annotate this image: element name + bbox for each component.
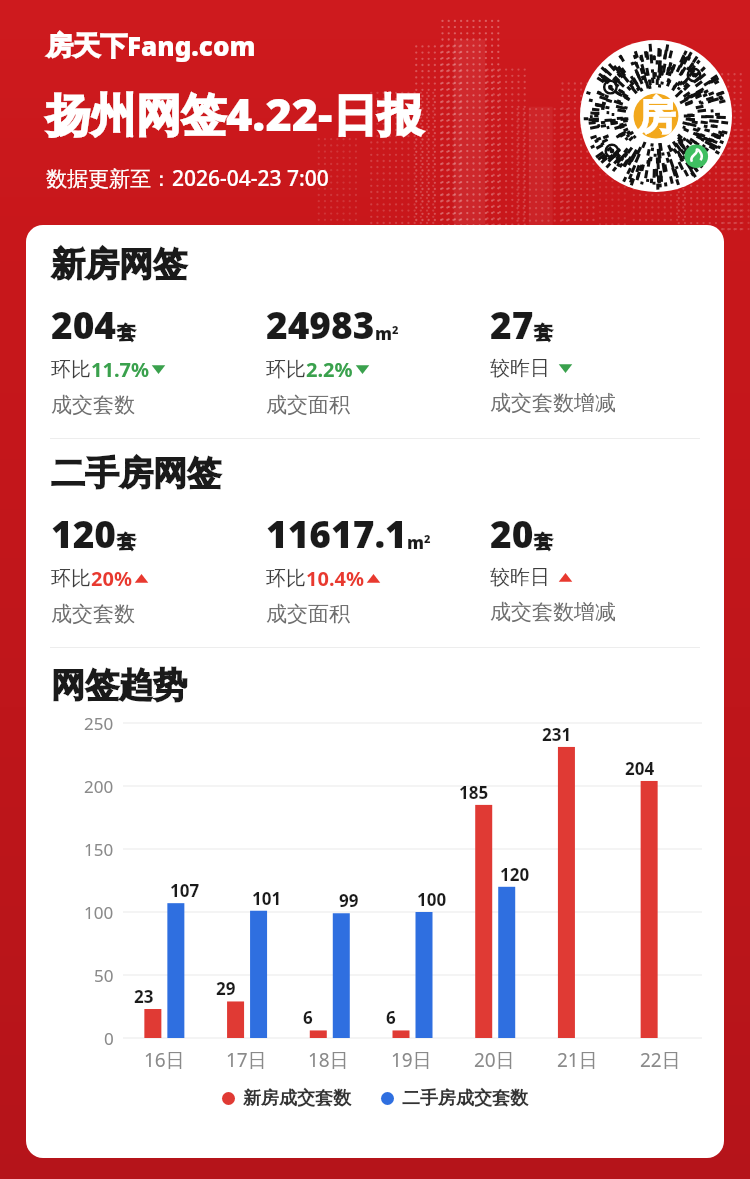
staticText: 27 xyxy=(490,299,534,349)
staticText: m xyxy=(375,322,392,345)
staticText: 204 xyxy=(51,299,117,349)
staticText: 2 xyxy=(392,322,399,337)
staticText: 20% xyxy=(91,565,132,592)
staticText: 较昨日 xyxy=(490,356,550,381)
staticText: 185 xyxy=(459,781,489,804)
staticText: 6 xyxy=(303,1006,313,1029)
staticText: 150 xyxy=(84,838,114,861)
button[interactable]: 房天下小程序二维码 xyxy=(580,40,732,192)
staticText: 107 xyxy=(170,879,200,902)
staticText: 101 xyxy=(252,887,282,910)
staticText: 22日 xyxy=(640,1047,681,1073)
staticText: 套 xyxy=(534,530,553,554)
staticText: 11617.1 xyxy=(266,508,407,558)
staticText: 套 xyxy=(117,530,136,554)
staticText: 200 xyxy=(84,775,114,798)
staticText: 成交套数 xyxy=(51,392,135,418)
staticText: 成交面积 xyxy=(266,601,350,627)
staticText: 成交套数增减 xyxy=(490,599,616,625)
staticText: 套 xyxy=(117,321,136,345)
staticText: 20 xyxy=(490,508,534,558)
button[interactable]: 新房成交套数 xyxy=(222,1087,351,1110)
staticText: 20日 xyxy=(474,1047,515,1073)
staticText: 新房网签 xyxy=(51,243,187,286)
staticText: 2.2% xyxy=(306,356,353,383)
staticText: 扬州网签4.22-日报 xyxy=(46,83,423,144)
staticText: 16日 xyxy=(144,1047,185,1073)
staticText: 环比 xyxy=(51,566,91,591)
staticText: 环比 xyxy=(266,357,306,382)
staticText: 套 xyxy=(534,321,553,345)
staticText: 二手房成交套数 xyxy=(402,1087,528,1110)
staticText: 24983 xyxy=(266,299,375,349)
staticText: 成交面积 xyxy=(266,392,350,418)
staticText: 成交套数 xyxy=(51,601,135,627)
button[interactable]: 二手房网签 xyxy=(26,452,724,647)
staticText: 网签趋势 xyxy=(51,664,187,707)
staticText: 环比 xyxy=(266,566,306,591)
staticText: 6 xyxy=(386,1006,396,1029)
staticText: 新房成交套数 xyxy=(243,1087,351,1110)
button[interactable]: 新房网签 xyxy=(26,243,724,438)
staticText: 100 xyxy=(417,888,447,911)
staticText: 二手房网签 xyxy=(51,452,221,495)
staticText: 17日 xyxy=(226,1047,267,1073)
staticText: 较昨日 xyxy=(490,565,550,590)
staticText: 23 xyxy=(134,985,154,1008)
staticText: 204 xyxy=(625,757,655,780)
staticText: 19日 xyxy=(391,1047,432,1073)
staticText: Fang.com xyxy=(127,28,256,63)
staticText: 房 xyxy=(637,92,675,140)
staticText: 120 xyxy=(51,508,117,558)
staticText: 231 xyxy=(542,723,572,746)
staticText: 18日 xyxy=(308,1047,349,1073)
button[interactable]: 二手房成交套数 xyxy=(381,1087,528,1110)
staticText: 29 xyxy=(216,977,236,1000)
staticText: 成交套数增减 xyxy=(490,390,616,416)
staticText: m xyxy=(407,531,424,554)
staticText: 50 xyxy=(94,964,114,987)
staticText: 250 xyxy=(84,712,114,735)
staticText: 2 xyxy=(424,531,431,546)
staticText: 99 xyxy=(339,889,359,912)
staticText: 房天下 xyxy=(46,29,127,63)
staticText: 21日 xyxy=(557,1047,598,1073)
staticText: 120 xyxy=(500,863,530,886)
staticText: 0 xyxy=(104,1027,114,1050)
staticText: 环比 xyxy=(51,357,91,382)
staticText: 11.7% xyxy=(91,356,149,383)
staticText: 10.4% xyxy=(306,565,364,592)
staticText: 数据更新至：2026-04-23 7:00 xyxy=(46,164,329,193)
staticText: 100 xyxy=(84,901,114,924)
